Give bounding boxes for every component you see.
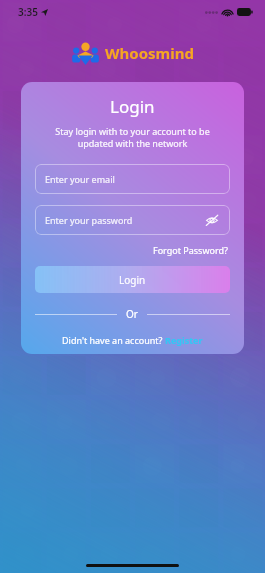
- staticText: Enter your password: [45, 214, 133, 226]
- button[interactable]: Forgot Password?: [151, 243, 230, 257]
- staticText: Whoosmind: [105, 43, 194, 63]
- staticText: Register: [165, 334, 203, 346]
- staticText: 3:35: [18, 5, 38, 19]
- button[interactable]: Show password: [204, 212, 220, 228]
- staticText: Stay login with to your account to be up…: [35, 125, 230, 150]
- staticText: Login: [110, 95, 155, 118]
- button[interactable]: Login: [35, 266, 230, 293]
- staticText: Or: [126, 307, 138, 321]
- button[interactable]: Enter your email: [35, 164, 230, 194]
- button[interactable]: Enter your password: [35, 205, 230, 235]
- staticText: Forgot Password?: [153, 244, 228, 256]
- staticText: Login: [119, 273, 146, 287]
- staticText: Enter your email: [45, 173, 115, 185]
- staticText: Didn't have an account?: [62, 334, 165, 346]
- button[interactable]: Didn't have an account?: [60, 332, 205, 348]
